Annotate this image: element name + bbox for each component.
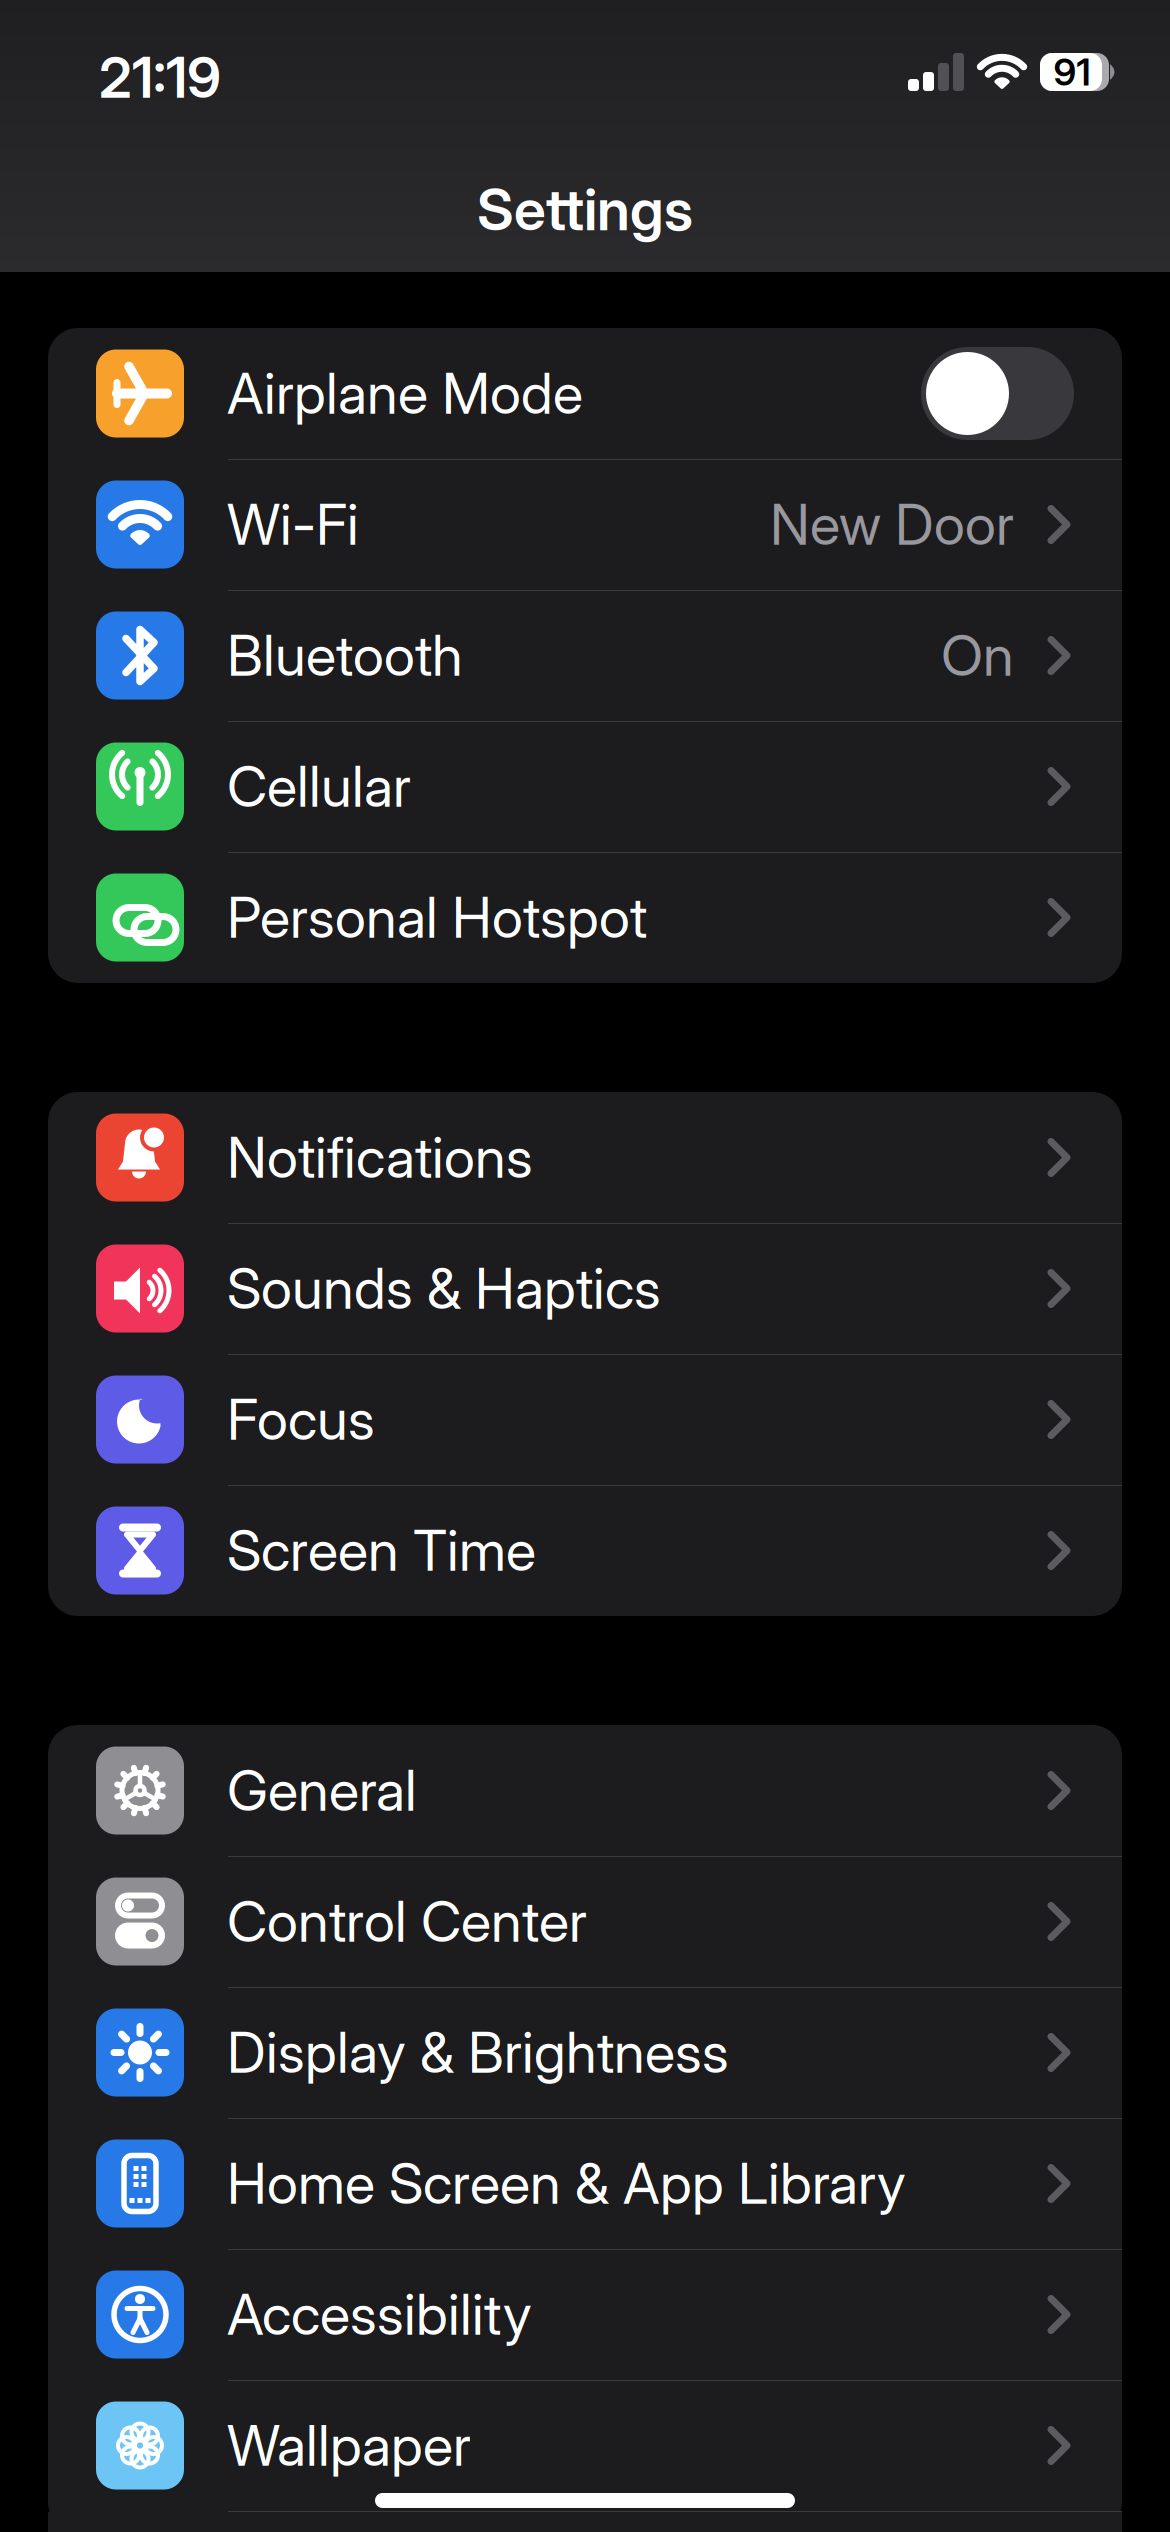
- button[interactable]: Bluetooth: [48, 590, 1122, 721]
- button[interactable]: Accessibility: [48, 2249, 1122, 2380]
- staticText: Wi-Fi: [227, 491, 359, 558]
- staticText: 91: [1053, 49, 1090, 95]
- staticText: Airplane Mode: [227, 360, 583, 427]
- staticText: Screen Time: [227, 1517, 536, 1584]
- staticText: Focus: [227, 1386, 375, 1453]
- button[interactable]: Home Screen & App Library: [48, 2118, 1122, 2249]
- button[interactable]: Focus: [48, 1354, 1122, 1485]
- staticText: Control Center: [227, 1888, 587, 1955]
- button[interactable]: Cellular: [48, 721, 1122, 852]
- button[interactable]: Personal Hotspot: [48, 852, 1122, 983]
- staticText: Cellular: [227, 753, 411, 820]
- button[interactable]: Wi-Fi: [48, 459, 1122, 590]
- staticText: Personal Hotspot: [227, 884, 647, 951]
- button[interactable]: Control Center: [48, 1856, 1122, 1987]
- button[interactable]: Wallpaper: [48, 2380, 1122, 2511]
- button[interactable]: Sounds & Haptics: [48, 1223, 1122, 1354]
- staticText: Display & Brightness: [227, 2019, 729, 2086]
- staticText: On: [941, 622, 1014, 689]
- button[interactable]: Airplane Mode: [921, 347, 1074, 440]
- button[interactable]: General: [48, 1725, 1122, 1856]
- staticText: Sounds & Haptics: [227, 1255, 661, 1322]
- staticText: Bluetooth: [227, 622, 463, 689]
- staticText: Notifications: [227, 1124, 533, 1191]
- staticText: Home Screen & App Library: [227, 2150, 906, 2217]
- button[interactable]: Screen Time: [48, 1485, 1122, 1616]
- button[interactable]: Notifications: [48, 1092, 1122, 1223]
- staticText: Accessibility: [227, 2281, 532, 2348]
- button[interactable]: Display & Brightness: [48, 1987, 1122, 2118]
- staticText: General: [227, 1757, 417, 1824]
- staticText: New Door: [770, 491, 1014, 558]
- staticText: Settings: [477, 175, 693, 244]
- staticText: 21:19: [99, 44, 221, 111]
- staticText: Wallpaper: [227, 2412, 471, 2479]
